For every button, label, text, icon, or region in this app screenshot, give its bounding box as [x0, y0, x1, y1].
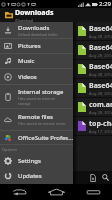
button[interactable]: Back	[0, 184, 38, 200]
button[interactable]: Pictures	[0, 39, 73, 53]
staticText: Aug 28, 2014	[89, 91, 112, 96]
button[interactable]: Base64Encoded	[0, 41, 112, 59]
button[interactable]: com.android.vending	[0, 98, 112, 116]
staticText: Base64Encoded	[89, 62, 112, 72]
staticText: Base64Encoded	[89, 81, 112, 91]
staticText: Music	[18, 57, 35, 65]
staticText: Pictures	[18, 42, 41, 50]
staticText: Settings	[18, 157, 41, 165]
button[interactable]: Remote files	[0, 109, 73, 130]
button[interactable]: Base64Encoded	[0, 60, 112, 78]
button[interactable]: Base64Encoded	[0, 22, 112, 40]
staticText: Updates	[18, 172, 42, 180]
staticText: OfficeSuite Profession...	[18, 134, 73, 142]
staticText: Remote files	[18, 113, 53, 121]
button[interactable]: Downloads	[0, 22, 73, 38]
staticText: Aug 28, 2014	[89, 53, 112, 58]
staticText: /Download	[15, 18, 33, 22]
staticText: Options	[2, 147, 17, 152]
staticText: Internal storage	[18, 88, 64, 96]
button[interactable]: New file	[86, 171, 99, 184]
staticText: Base64Encoded	[89, 24, 112, 34]
staticText: Aug 28, 2014	[89, 110, 112, 115]
button[interactable]: Internal storage	[0, 85, 73, 108]
staticText: Base64Encoded	[89, 43, 112, 53]
staticText: top-chart.apk	[89, 119, 112, 129]
button[interactable]: Settings	[0, 153, 73, 168]
staticText: 2:29	[99, 0, 111, 8]
button[interactable]: OfficeSuite Profession...	[0, 131, 73, 144]
button[interactable]: Search	[99, 171, 112, 184]
staticText: Files stored on remote server	[18, 121, 67, 126]
staticText: Default download folder	[18, 32, 58, 37]
staticText: Downloads	[18, 24, 50, 32]
staticText: Aug 28, 2014	[89, 34, 112, 39]
staticText: Downloads	[15, 8, 54, 18]
button[interactable]: Base64Encoded	[0, 79, 112, 97]
button[interactable]: Videos	[0, 69, 73, 84]
staticText: Files saved on internal	[18, 96, 55, 101]
button[interactable]: Recents	[75, 184, 112, 200]
button[interactable]: Music	[0, 54, 73, 68]
staticText: Videos	[18, 73, 37, 81]
staticText: Aug 28, 2014	[89, 72, 112, 77]
staticText: Aug 17, 2014	[89, 129, 112, 134]
button[interactable]: top-chart.apk	[0, 117, 112, 135]
staticText: storage	[18, 101, 31, 106]
button[interactable]: Downloads	[0, 8, 112, 22]
button[interactable]: Updates	[0, 168, 73, 183]
staticText: com.android.vending	[89, 100, 112, 110]
button[interactable]: Home	[38, 184, 75, 200]
